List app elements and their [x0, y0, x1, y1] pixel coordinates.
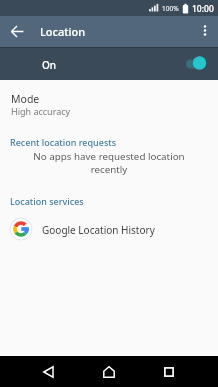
- staticText: Recent location requests: [10, 136, 117, 148]
- staticText: No apps have requested location recently: [0, 150, 218, 176]
- button[interactable]: [33, 357, 63, 387]
- button[interactable]: On: [0, 47, 218, 80]
- staticText: High accuracy: [11, 105, 71, 117]
- button[interactable]: Mode: [0, 88, 218, 128]
- staticText: Google Location History: [42, 223, 155, 237]
- staticText: On: [42, 58, 57, 72]
- staticText: Mode: [11, 92, 40, 106]
- button[interactable]: Google Location History: [0, 212, 218, 246]
- button[interactable]: [94, 357, 124, 387]
- staticText: Location services: [10, 195, 84, 207]
- staticText: 100%: [162, 4, 179, 13]
- button[interactable]: [4, 18, 30, 44]
- staticText: Location: [40, 24, 86, 39]
- button[interactable]: [154, 357, 184, 387]
- staticText: 10:00: [192, 3, 214, 15]
- button[interactable]: [195, 18, 215, 44]
